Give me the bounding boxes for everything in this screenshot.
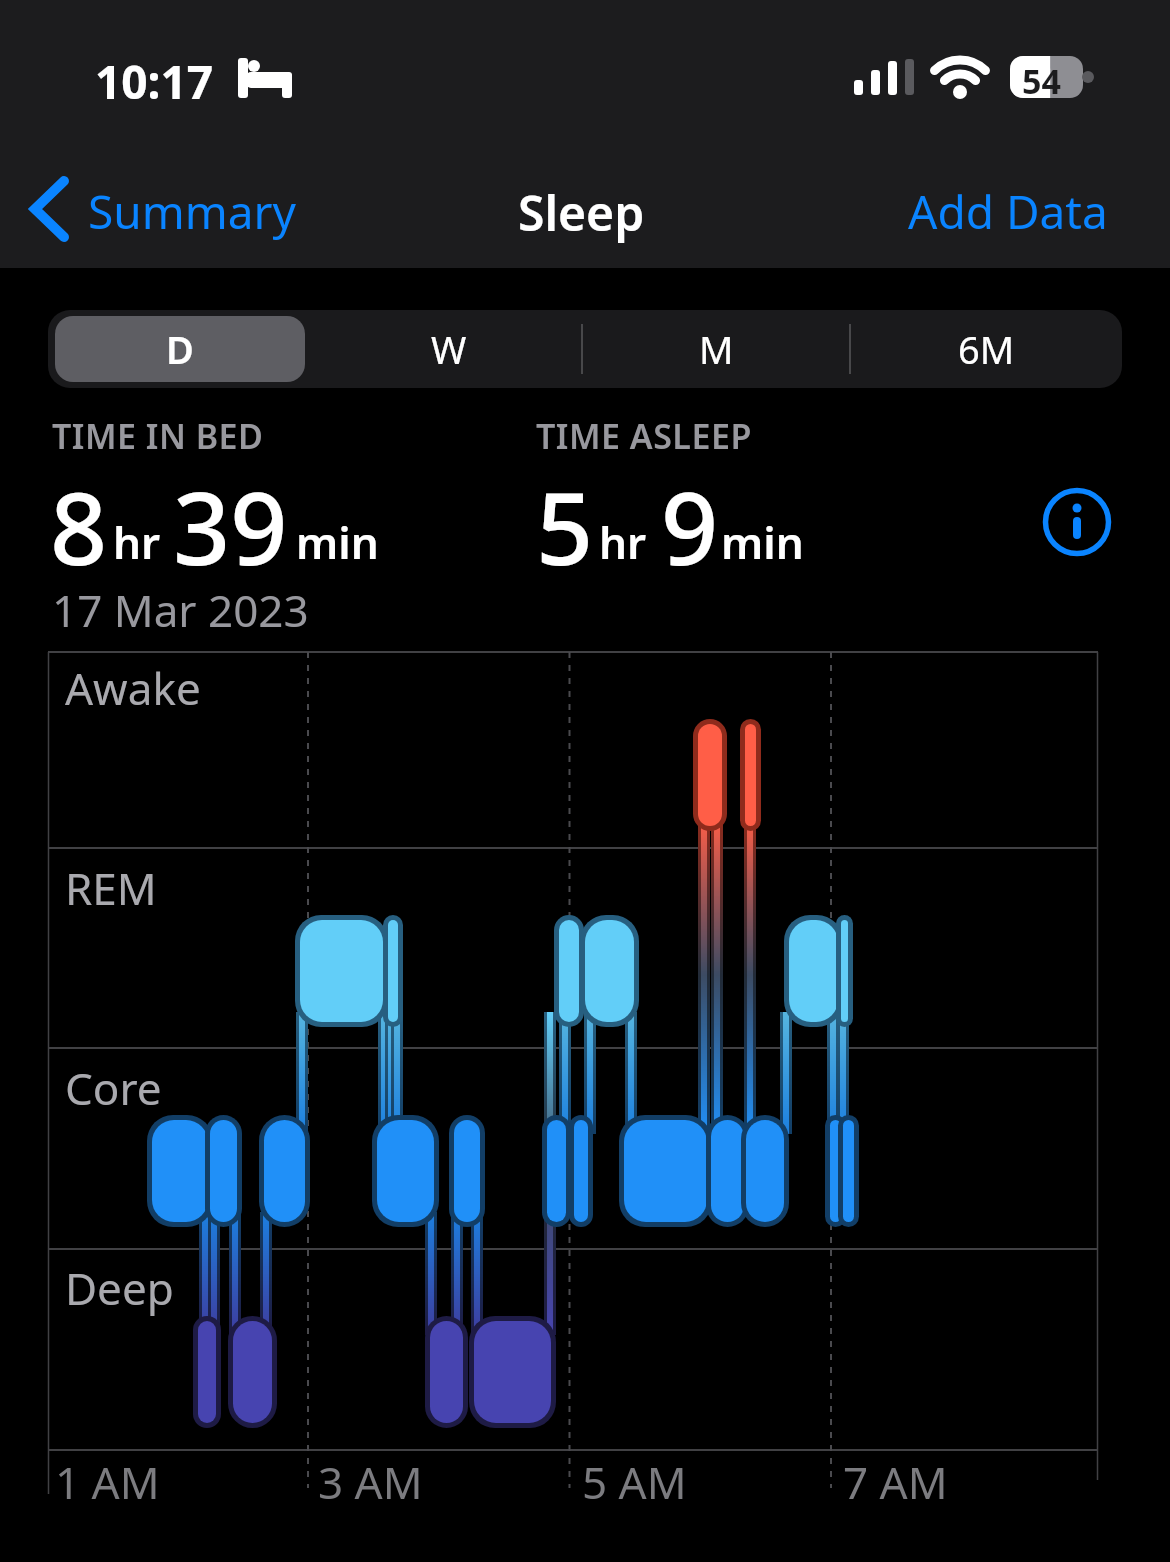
staticText: Core: [65, 1058, 162, 1118]
button[interactable]: Summary: [20, 178, 310, 240]
staticText: 9: [661, 458, 719, 594]
staticText: 8: [50, 458, 108, 594]
staticText: 54: [1022, 58, 1061, 104]
staticText: 5 AM: [582, 1452, 687, 1512]
staticText: Deep: [65, 1258, 174, 1318]
staticText: 6M: [958, 323, 1015, 375]
button[interactable]: Add Data: [900, 178, 1130, 240]
staticText: 10:17: [95, 50, 214, 113]
staticText: TIME IN BED: [52, 413, 264, 459]
staticText: min: [721, 512, 804, 572]
staticText: 5: [536, 458, 594, 594]
staticText: 39: [173, 458, 288, 594]
button[interactable]: [1043, 488, 1111, 556]
staticText: hr: [113, 512, 161, 572]
staticText: hr: [599, 512, 647, 572]
staticText: 7 AM: [843, 1452, 948, 1512]
staticText: Sleep: [518, 180, 645, 245]
staticText: Awake: [65, 658, 201, 718]
staticText: Add Data: [908, 180, 1108, 242]
staticText: D: [166, 323, 194, 375]
button[interactable]: 6M: [851, 310, 1122, 388]
staticText: W: [431, 323, 467, 375]
staticText: 3 AM: [318, 1452, 423, 1512]
staticText: REM: [65, 858, 157, 918]
staticText: 1 AM: [55, 1452, 160, 1512]
button[interactable]: D: [55, 316, 305, 382]
staticText: min: [296, 512, 379, 572]
button[interactable]: W: [316, 310, 581, 388]
button[interactable]: M: [583, 310, 849, 388]
staticText: M: [699, 323, 734, 375]
staticText: 17 Mar 2023: [52, 580, 309, 640]
staticText: TIME ASLEEP: [536, 413, 752, 459]
staticText: Summary: [88, 180, 296, 242]
